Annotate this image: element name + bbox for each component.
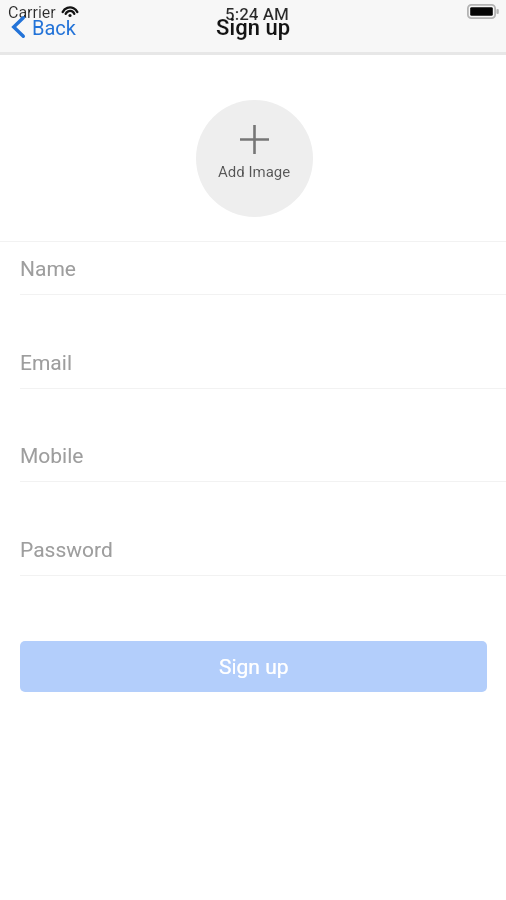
staticText: Carrier bbox=[8, 3, 56, 22]
staticText: Password bbox=[20, 538, 113, 563]
staticText: Add Image bbox=[218, 163, 291, 181]
staticText: Email bbox=[20, 351, 72, 376]
staticText: 5:24 AM bbox=[225, 4, 289, 24]
staticText: Sign up bbox=[216, 15, 291, 41]
button[interactable]: Add Image bbox=[196, 100, 313, 217]
staticText: Back bbox=[32, 16, 76, 39]
button[interactable]: Mobile bbox=[0, 426, 506, 482]
staticText: Mobile bbox=[20, 444, 84, 469]
button[interactable]: Email bbox=[0, 333, 506, 389]
staticText: Name bbox=[20, 257, 76, 282]
button[interactable]: Name bbox=[0, 239, 506, 295]
button[interactable]: Password bbox=[0, 520, 506, 576]
button[interactable]: Sign up bbox=[20, 641, 487, 692]
staticText: Sign up bbox=[219, 655, 289, 680]
button[interactable]: Back bbox=[8, 12, 82, 41]
